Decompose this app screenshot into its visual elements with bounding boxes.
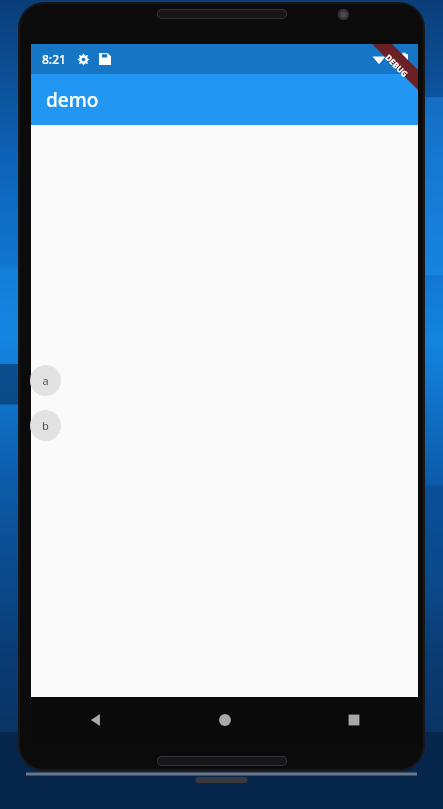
button[interactable]: Recent apps	[289, 697, 418, 742]
button[interactable]: b	[30, 410, 61, 441]
button[interactable]: Back	[31, 697, 160, 742]
staticText: demo	[46, 87, 99, 113]
staticText: a	[42, 373, 49, 388]
button[interactable]: a	[30, 365, 61, 396]
staticText: 8:21	[42, 51, 66, 67]
button[interactable]: Home	[160, 697, 289, 742]
staticText: b	[42, 418, 49, 433]
staticText: DEBUG	[383, 52, 411, 79]
